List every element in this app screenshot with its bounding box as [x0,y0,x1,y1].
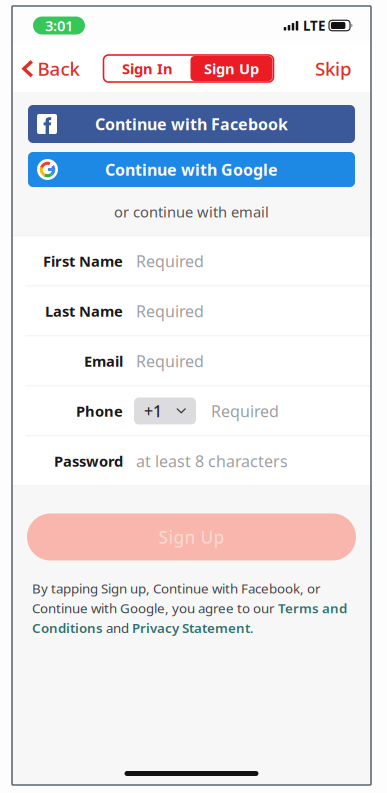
staticText: 3:01 [45,16,73,35]
staticText: Last Name [45,301,123,321]
staticText: Email [84,351,123,371]
staticText: LTE [303,17,325,34]
staticText: +1 [144,400,162,422]
staticText: Required [136,300,204,322]
button[interactable]: Sign In [104,56,190,81]
staticText: Skip [315,56,352,81]
staticText: Password [54,451,123,471]
staticText: Terms and [278,599,347,617]
staticText: at least 8 characters [136,450,288,472]
button[interactable]: Privacy Statement [132,619,250,637]
staticText: . [250,619,254,637]
staticText: Sign Up [158,525,224,548]
staticText: Phone [76,401,123,421]
button[interactable]: Sign Up [27,513,356,560]
button[interactable]: Conditions [32,619,103,637]
staticText: Back [37,56,79,81]
staticText: Conditions [32,619,103,637]
button[interactable]: Last Name [12,286,371,335]
staticText: Sign In [122,59,173,78]
button[interactable]: Sign Up [190,56,272,81]
staticText: Sign Up [204,59,259,78]
staticText: Continue with Google, you agree to our [32,599,278,617]
staticText: Required [136,250,204,272]
staticText: Required [136,350,204,372]
staticText: Continue with Facebook [95,113,288,135]
staticText: Privacy Statement [132,619,250,637]
staticText: Required [211,400,279,422]
staticText: By tapping Sign up, Continue with Facebo… [32,579,321,597]
button[interactable]: Skip [315,48,371,89]
button[interactable]: First Name [12,236,371,285]
button[interactable]: Continue with Google [28,152,355,187]
staticText: or continue with email [114,202,269,221]
staticText: First Name [43,251,123,271]
button[interactable]: Password [12,436,371,485]
button[interactable]: Back [12,48,79,89]
staticText: and [103,619,132,637]
button[interactable]: Terms and [278,599,347,617]
staticText: Continue with Google [105,159,278,180]
button[interactable]: Phone [12,386,371,435]
button[interactable]: Continue with Facebook [28,105,355,143]
button[interactable]: Email [12,336,371,385]
